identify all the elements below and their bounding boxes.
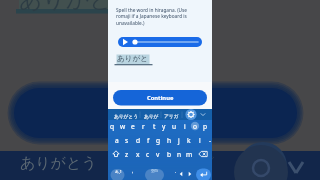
staticText: y [162,122,166,131]
staticText: m [186,150,193,159]
button[interactable] [150,134,160,147]
button[interactable] [170,162,182,176]
button[interactable] [150,121,160,134]
button[interactable] [202,121,212,134]
staticText: i [184,122,186,131]
staticText: k [187,136,191,145]
button[interactable] [127,162,139,176]
button[interactable] [176,147,187,160]
staticText: r [142,122,145,131]
staticText: n [177,150,182,159]
staticText: j [178,136,180,145]
button[interactable] [191,121,201,134]
staticText: ありがと [117,54,149,64]
button[interactable] [202,134,212,147]
button[interactable]: Shift [108,147,121,160]
button[interactable]: Switch language [109,162,127,176]
staticText: ありが [144,113,159,119]
staticText: f [147,136,150,145]
button[interactable] [112,110,140,120]
staticText: アリガ [171,154,214,172]
button[interactable] [170,134,180,147]
staticText: ありがとう [20,154,97,173]
staticText: . [175,168,177,175]
staticText: o [193,122,197,131]
staticText: あ,1 [115,169,122,174]
button[interactable]: Continue [113,90,207,106]
button[interactable] [139,134,149,147]
staticText: u [172,122,177,131]
button[interactable]: Cursor right [192,162,202,176]
staticText: v [156,150,160,159]
button[interactable] [154,147,165,160]
button[interactable] [143,147,154,160]
staticText: ありがと [19,0,113,14]
staticText: c [146,150,150,159]
staticText: 空白 [151,169,159,174]
button[interactable] [108,121,118,134]
button[interactable] [121,147,132,160]
button[interactable] [129,134,139,147]
button[interactable] [165,147,176,160]
button[interactable] [181,121,191,134]
staticText: t [153,122,156,131]
button[interactable] [143,110,167,120]
staticText: e [131,122,135,131]
staticText: , [132,168,134,175]
button[interactable] [181,134,191,147]
button[interactable] [129,121,139,134]
staticText: q [110,122,115,131]
staticText: x [136,150,140,159]
button[interactable] [187,147,198,160]
staticText: g [156,136,161,145]
button[interactable]: Backspace [198,147,212,160]
staticText: b [167,150,172,159]
staticText: l [199,136,201,145]
staticText: Continue [147,94,174,102]
staticText: w [120,122,126,131]
button[interactable] [132,147,143,160]
staticText: ありがとう [114,113,138,119]
staticText: Spell the word in hiragana. (Use romaji … [116,7,194,27]
button[interactable] [118,134,128,147]
staticText: h [167,136,172,145]
button[interactable] [191,134,201,147]
button[interactable] [160,134,170,147]
staticText: a [115,136,119,145]
button[interactable]: Cursor left [182,162,192,176]
button[interactable] [170,121,180,134]
button[interactable] [139,121,149,134]
button[interactable]: Keyboard settings [191,109,203,121]
button[interactable]: Play audio [118,37,202,47]
button[interactable] [108,134,118,147]
staticText: ありが [110,154,157,173]
staticText: z [125,150,129,159]
staticText: d [136,136,141,145]
button[interactable] [118,121,128,134]
staticText: s [125,136,129,145]
staticText: p [203,122,208,131]
button[interactable]: Enter [194,162,210,176]
button[interactable] [169,110,191,120]
button[interactable] [160,121,170,134]
button[interactable]: Space [139,162,170,176]
staticText: - [209,136,212,145]
staticText: アリガ [164,113,179,119]
